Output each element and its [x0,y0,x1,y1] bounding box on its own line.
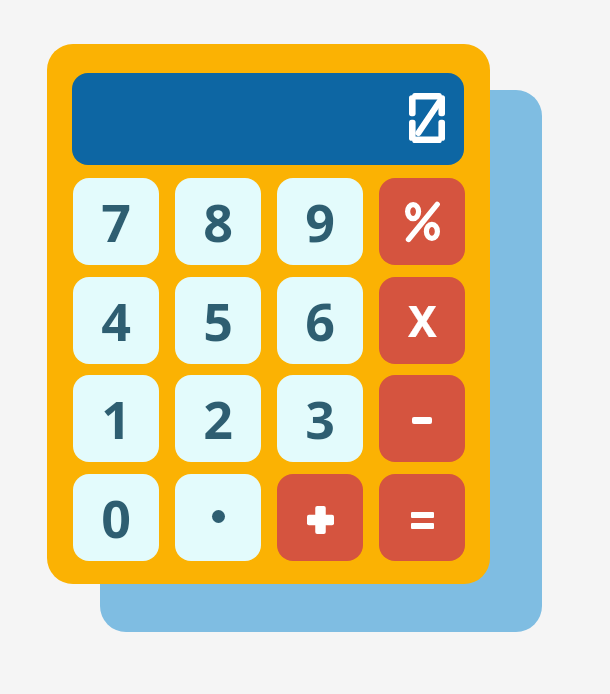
button[interactable]: Eight [175,178,261,265]
staticText: 4 [101,285,131,356]
button[interactable]: Zero [73,474,159,561]
staticText: 0 [101,482,131,553]
button[interactable]: Seven [73,178,159,265]
button[interactable]: One [73,375,159,462]
button[interactable]: Five [175,277,261,364]
staticText: 5 [203,285,233,356]
button[interactable]: Nine [277,178,363,265]
staticText: 7 [101,186,131,257]
staticText: 3 [305,383,335,454]
button[interactable]: Multiply [379,277,465,364]
staticText: 9 [305,186,335,257]
button[interactable]: Decimal point [175,474,261,561]
button[interactable]: Minus [379,375,465,462]
button[interactable]: Percent [379,178,465,265]
button[interactable]: Display [72,73,464,165]
staticText: 1 [101,383,131,454]
staticText: X [408,291,437,350]
staticText: 8 [203,186,233,257]
staticText: 6 [305,285,335,356]
button[interactable]: Three [277,375,363,462]
button[interactable]: Two [175,375,261,462]
other: Display [409,93,445,143]
button[interactable]: Six [277,277,363,364]
staticText: 2 [203,383,233,454]
button[interactable]: Equals [379,474,465,561]
button[interactable]: Plus [277,474,363,561]
button[interactable]: Four [73,277,159,364]
